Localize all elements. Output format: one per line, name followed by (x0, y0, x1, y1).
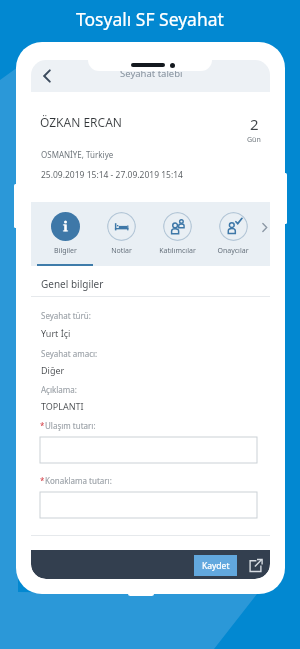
button[interactable]: Bilgiler (34, 205, 96, 263)
staticText: Seyahat talebi (120, 67, 183, 80)
staticText: Tosyalı SF Seyahat (76, 7, 224, 31)
staticText: Bilgiler (54, 246, 77, 256)
button[interactable]: Kaydet (194, 555, 237, 576)
button[interactable]: Paylaş (245, 555, 266, 576)
button[interactable]: Notlar (90, 205, 152, 263)
button[interactable]: Onaycılar (202, 205, 264, 263)
staticText: Katılımcılar (159, 246, 196, 256)
staticText: 25.09.2019 15:14 - 27.09.2019 15:14 (41, 169, 183, 181)
button[interactable] (40, 437, 257, 463)
staticText: Notlar (111, 246, 132, 256)
staticText: TOPLANTI (41, 400, 84, 412)
staticText: ÖZKAN ERCAN (40, 114, 122, 130)
staticText: Ulaşım tutarı: (45, 420, 96, 431)
staticText: Yurt İçi (41, 327, 71, 339)
button[interactable]: Katılımcılar (146, 205, 208, 263)
button[interactable] (40, 492, 257, 518)
staticText: * (40, 420, 45, 431)
staticText: OSMANİYE, Türkiye (41, 149, 114, 160)
staticText: Seyahat türü: (41, 310, 91, 321)
staticText: Açıklama: (41, 384, 77, 395)
staticText: Onaycılar (217, 246, 249, 256)
staticText: Gün (247, 135, 261, 145)
staticText: 2 (250, 114, 259, 134)
staticText: * (40, 475, 45, 486)
staticText: Genel bilgiler (41, 277, 104, 291)
staticText: Seyahat amacı: (41, 348, 98, 359)
button[interactable]: Geri (35, 64, 59, 88)
staticText: Diğer (41, 364, 65, 376)
staticText: Konaklama tutarı: (45, 475, 112, 486)
staticText: Kaydet (202, 560, 230, 572)
